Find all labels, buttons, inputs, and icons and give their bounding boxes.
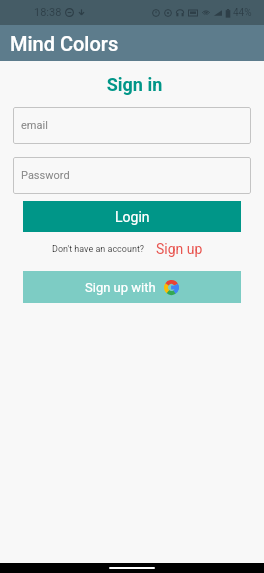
staticText: Login — [115, 209, 150, 225]
staticText: 18:38 — [34, 6, 62, 19]
staticText: Mind Colors — [10, 32, 119, 55]
staticText: Sign up — [156, 241, 203, 257]
button[interactable]: Sign up with — [23, 271, 241, 303]
button[interactable]: Login — [23, 201, 241, 232]
button[interactable]: Sign up — [156, 241, 203, 257]
staticText: email — [21, 119, 48, 132]
staticText: 44% — [233, 7, 252, 19]
staticText: Password — [21, 169, 70, 182]
staticText: Sign in — [5, 74, 264, 95]
button[interactable]: Password — [13, 157, 251, 194]
staticText: Don't have an account? — [52, 244, 145, 255]
staticText: Sign up with — [85, 280, 156, 295]
button[interactable]: email — [13, 107, 251, 144]
